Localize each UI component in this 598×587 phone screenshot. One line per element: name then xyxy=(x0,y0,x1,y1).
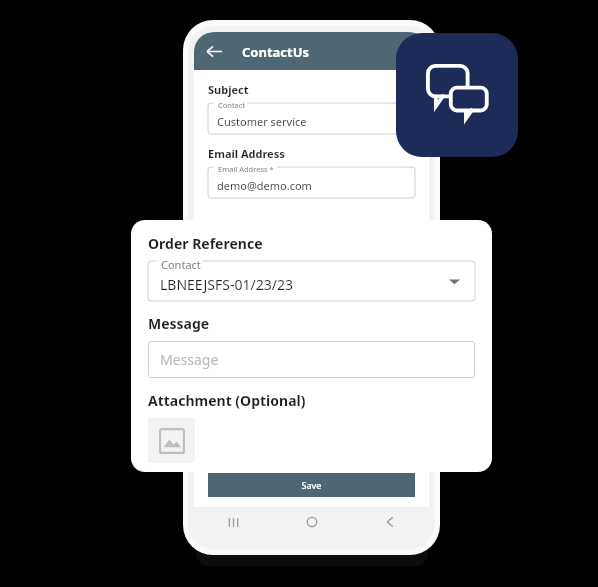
button[interactable]: Contact us chat xyxy=(396,33,518,157)
staticText: Message xyxy=(160,350,219,369)
staticText: Email Address * xyxy=(218,164,274,174)
button[interactable]: Contact xyxy=(208,103,415,134)
staticText: Message xyxy=(148,314,210,333)
staticText: Order Reference xyxy=(148,234,263,253)
button[interactable]: Back xyxy=(202,39,226,63)
button[interactable]: Message xyxy=(148,341,475,378)
button[interactable]: Home xyxy=(273,516,351,528)
staticText: Email Address xyxy=(208,146,285,161)
other: Open dropdown xyxy=(447,274,461,288)
staticText: demo@demo.com xyxy=(217,178,312,193)
staticText: LBNEEJSFS-01/23/23 xyxy=(160,275,293,294)
staticText: Contact xyxy=(218,100,246,110)
button[interactable]: Save xyxy=(208,473,415,497)
staticText: Save xyxy=(301,479,322,491)
button[interactable]: Recents xyxy=(194,517,273,528)
staticText: ContactUs xyxy=(242,43,310,61)
button[interactable]: Back xyxy=(351,516,429,528)
button[interactable]: Email Address * xyxy=(208,167,415,198)
button[interactable]: Add attachment xyxy=(148,418,195,463)
staticText: Customer service xyxy=(217,114,307,129)
staticText: Attachment (Optional) xyxy=(148,391,306,410)
button[interactable]: Contact xyxy=(148,261,475,301)
staticText: Subject xyxy=(208,82,249,97)
staticText: Contact xyxy=(161,257,201,272)
